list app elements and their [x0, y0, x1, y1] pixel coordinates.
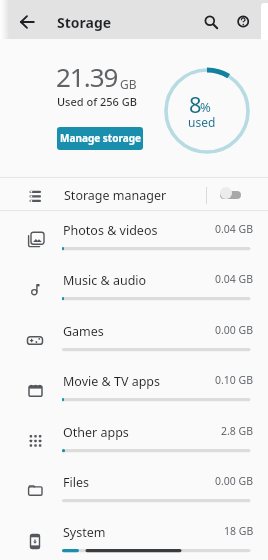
- staticText: 0.10 GB: [215, 373, 254, 387]
- staticText: 21.39: [56, 59, 118, 94]
- button[interactable]: Files: [0, 460, 268, 510]
- button[interactable]: System: [0, 510, 268, 560]
- staticText: Photos & videos: [63, 222, 158, 239]
- button[interactable]: Storage manager: [0, 171, 268, 207]
- button[interactable]: [8, 0, 47, 39]
- button[interactable]: [224, 0, 263, 39]
- staticText: 18 GB: [224, 524, 254, 538]
- staticText: used: [188, 114, 216, 130]
- staticText: Music & audio: [63, 272, 147, 289]
- staticText: 0.00 GB: [215, 474, 254, 488]
- staticText: Storage: [57, 13, 112, 32]
- button[interactable]: Manage storage: [57, 127, 143, 150]
- staticText: Games: [63, 323, 104, 340]
- button[interactable]: Music & audio: [0, 258, 268, 308]
- button[interactable]: Photos & videos: [0, 208, 268, 258]
- button[interactable]: Games: [0, 309, 268, 359]
- staticText: Storage manager: [64, 187, 167, 204]
- button[interactable]: [190, 0, 229, 39]
- staticText: 0.00 GB: [215, 323, 254, 337]
- staticText: Files: [63, 474, 89, 491]
- staticText: 0.04 GB: [215, 272, 254, 286]
- staticText: Movie & TV apps: [63, 373, 161, 390]
- button[interactable]: [212, 176, 256, 204]
- button[interactable]: Movie & TV apps: [0, 359, 268, 409]
- staticText: Other apps: [63, 424, 129, 441]
- staticText: GB: [120, 76, 137, 92]
- staticText: 2.8 GB: [221, 424, 254, 438]
- button[interactable]: Other apps: [0, 410, 268, 460]
- staticText: Used of 256 GB: [57, 94, 137, 109]
- staticText: Manage storage: [60, 131, 141, 145]
- staticText: System: [63, 524, 106, 541]
- staticText: 0.04 GB: [215, 222, 254, 236]
- staticText: 8: [189, 89, 202, 119]
- staticText: %: [200, 98, 211, 116]
